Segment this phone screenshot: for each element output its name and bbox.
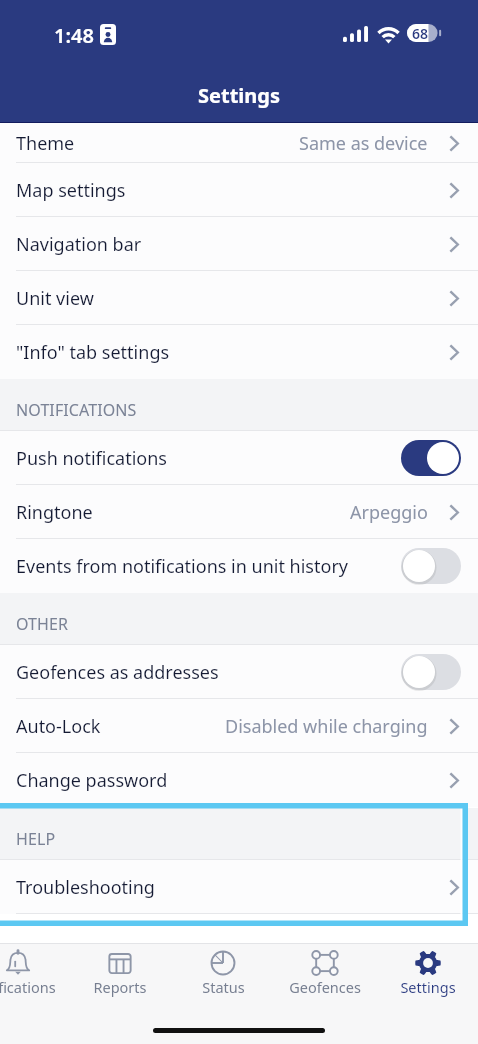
staticText: NOTIFICATIONS	[16, 399, 137, 421]
staticText: Unit view	[16, 286, 94, 311]
button[interactable]: Settings	[377, 944, 478, 1004]
button[interactable]: Push notifications	[0, 431, 478, 485]
staticText: Arpeggio	[350, 500, 428, 525]
button[interactable]: Map settings	[0, 163, 478, 217]
staticText: Events from notifications in unit histor…	[16, 554, 348, 579]
button[interactable]: Reports	[69, 944, 171, 1004]
button[interactable]: Events from notifications in unit histor…	[0, 539, 478, 593]
button[interactable]: Ringtone	[0, 485, 478, 539]
staticText: Theme	[16, 131, 75, 156]
staticText: "Info" tab settings	[16, 340, 170, 365]
staticText: Auto-Lock	[16, 714, 101, 739]
staticText: Change password	[16, 768, 168, 793]
staticText: Ringtone	[16, 500, 93, 525]
staticText: OTHER	[16, 613, 69, 635]
button[interactable]: Navigation bar	[0, 217, 478, 271]
staticText: Geofences as addresses	[16, 660, 219, 685]
staticText: Settings	[400, 977, 456, 997]
button[interactable]: Unit view	[0, 271, 478, 325]
staticText: Navigation bar	[16, 232, 142, 257]
staticText: Map settings	[16, 178, 126, 203]
staticText: 68	[412, 24, 429, 42]
staticText: HELP	[16, 828, 56, 850]
staticText: Push notifications	[16, 446, 167, 471]
button[interactable]: Geofences as addresses	[0, 645, 478, 699]
button[interactable]: Notifications	[0, 944, 69, 1004]
staticText: 1:48	[54, 22, 94, 49]
button[interactable]: Geofences	[274, 944, 376, 1004]
staticText: Reports	[93, 977, 147, 997]
button[interactable]: Auto-Lock	[0, 699, 478, 753]
button[interactable]: Theme	[0, 123, 478, 163]
staticText: Same as device	[299, 131, 428, 156]
button[interactable]: Change password	[0, 753, 478, 807]
staticText: otifications	[0, 977, 56, 997]
staticText: Disabled while charging	[225, 714, 428, 739]
staticText: Settings	[198, 82, 280, 109]
button[interactable]: "Info" tab settings	[0, 325, 478, 379]
staticText: Troubleshooting	[16, 875, 155, 900]
button[interactable]: Status	[172, 944, 274, 1004]
staticText: Geofences	[289, 977, 361, 997]
button[interactable]: Troubleshooting	[0, 860, 478, 914]
staticText: Status	[202, 977, 245, 997]
